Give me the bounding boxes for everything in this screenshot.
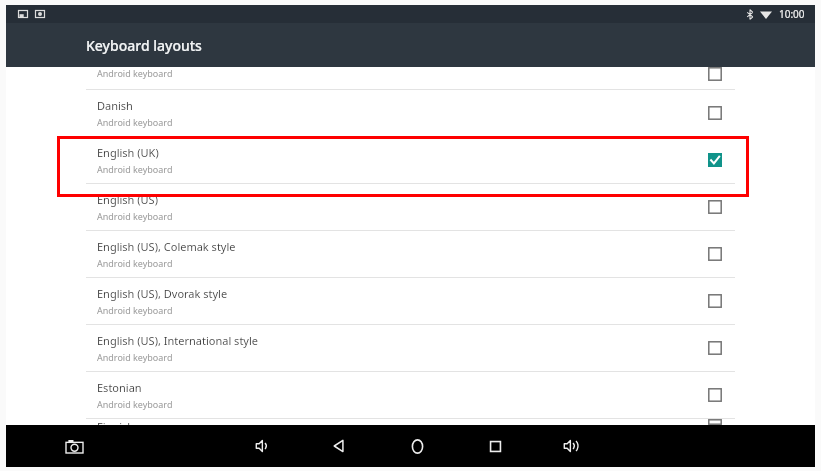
button[interactable]: English (US), Colemak style (6, 231, 815, 277)
other: Select layout (708, 67, 722, 81)
staticText: English (UK) (97, 145, 159, 160)
other: Select layout (708, 153, 722, 167)
other: Select layout (708, 419, 722, 425)
button[interactable]: Home (400, 429, 434, 463)
staticText: Estonian (97, 380, 142, 395)
other: Select layout (708, 200, 722, 214)
staticText: Android keyboard (97, 116, 173, 128)
staticText: English (US), International style (97, 333, 259, 348)
button[interactable]: Volume up (554, 429, 588, 463)
button[interactable]: English (US), Dvorak style (6, 278, 815, 324)
staticText: Android keyboard (97, 304, 173, 316)
other: Select layout (708, 106, 722, 120)
staticText: Android keyboard (97, 163, 173, 175)
button[interactable]: English (UK) (6, 137, 815, 183)
other: Select layout (708, 388, 722, 402)
other: Select layout (708, 294, 722, 308)
other: Select layout (708, 341, 722, 355)
staticText: Android keyboard (97, 351, 173, 363)
staticText: 10:00 (779, 7, 805, 21)
other: Select layout (708, 247, 722, 261)
button[interactable]: Volume down (246, 429, 280, 463)
staticText: Android keyboard (97, 398, 173, 410)
button[interactable]: Recents (478, 429, 512, 463)
staticText: Android keyboard (97, 210, 173, 222)
staticText: Finnish (97, 419, 135, 425)
staticText: Keyboard layouts (86, 36, 202, 55)
button[interactable]: Finnish (6, 419, 815, 425)
button[interactable]: Danish (6, 90, 815, 136)
button[interactable]: English (US), International style (6, 325, 815, 371)
staticText: English (US), Colemak style (97, 239, 236, 254)
button[interactable]: English (US) (6, 184, 815, 230)
staticText: English (US), Dvorak style (97, 286, 228, 301)
staticText: Android keyboard (97, 67, 173, 79)
button[interactable]: Back (322, 429, 356, 463)
button[interactable]: Screenshot (58, 430, 90, 462)
staticText: English (US) (97, 192, 158, 207)
button[interactable]: Android keyboard (6, 67, 815, 89)
staticText: Android keyboard (97, 257, 173, 269)
staticText: Danish (97, 98, 133, 113)
button[interactable]: Estonian (6, 372, 815, 418)
